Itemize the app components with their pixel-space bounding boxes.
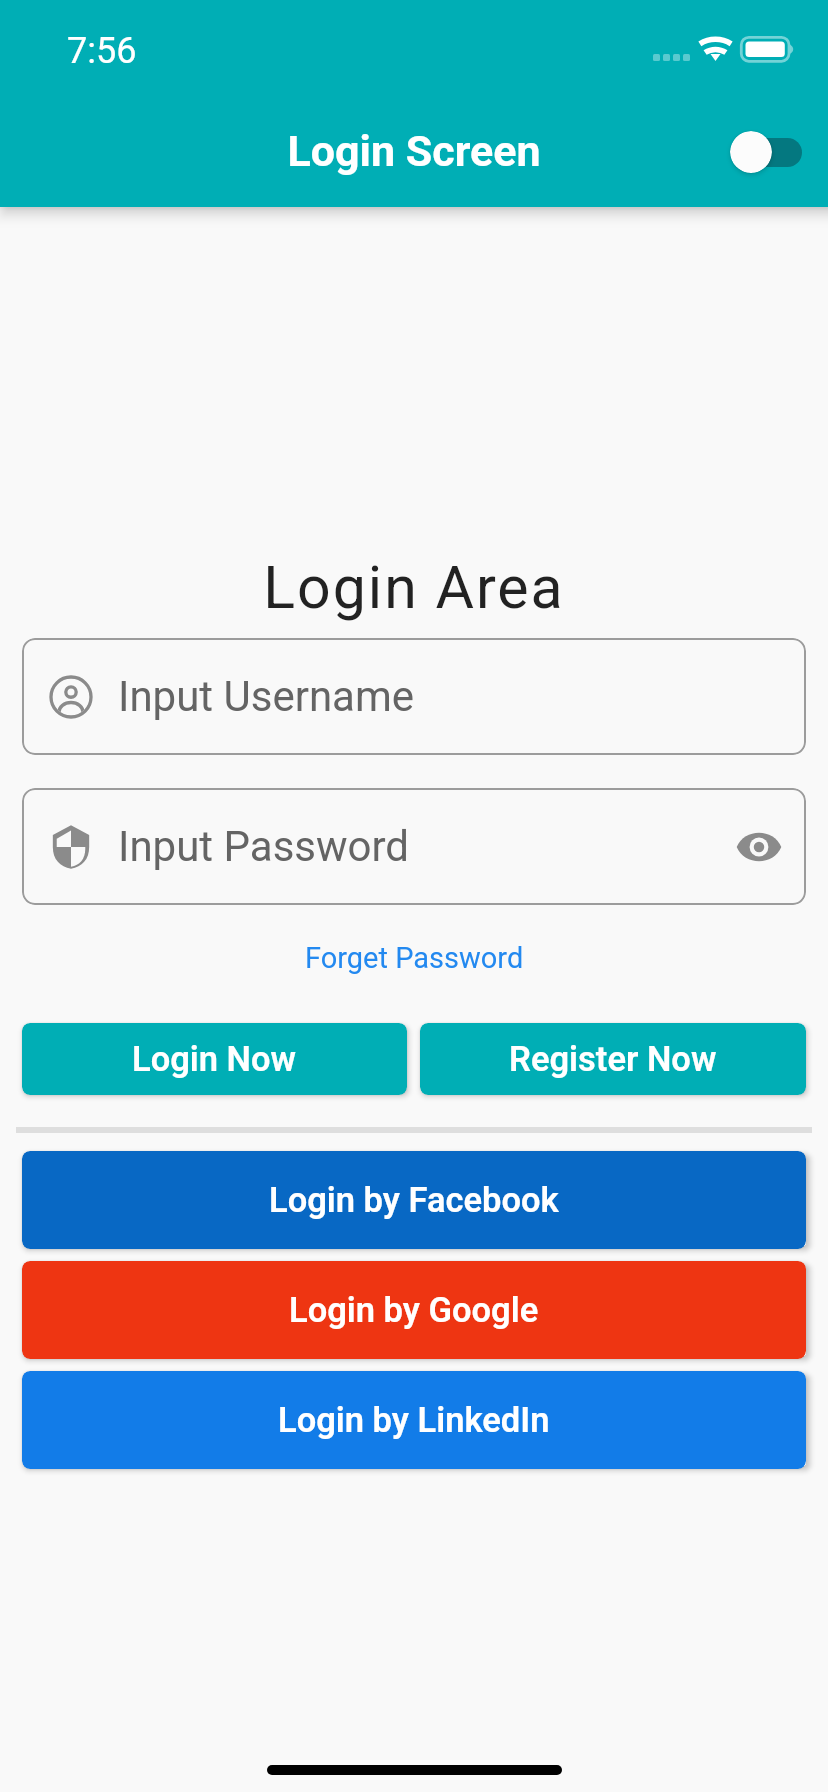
- staticText: Login by LinkedIn: [278, 1400, 550, 1440]
- staticText: Input Password: [118, 822, 410, 871]
- button[interactable]: Login by Facebook: [22, 1151, 806, 1249]
- staticText: Login Screen: [0, 126, 828, 176]
- button[interactable]: Input Username: [22, 638, 806, 755]
- staticText: 7:56: [67, 30, 137, 72]
- button[interactable]: Login by Google: [22, 1261, 806, 1359]
- button[interactable]: Input Password: [22, 788, 806, 905]
- staticText: Register Now: [509, 1039, 717, 1079]
- button[interactable]: Login Now: [22, 1023, 407, 1095]
- staticText: Forget Password: [305, 941, 524, 975]
- button[interactable]: Login by LinkedIn: [22, 1371, 806, 1469]
- button[interactable]: Register Now: [420, 1023, 806, 1095]
- button[interactable]: Show password: [729, 817, 789, 877]
- staticText: Login Now: [132, 1039, 297, 1079]
- staticText: Input Username: [118, 672, 415, 721]
- staticText: Login by Google: [289, 1290, 539, 1330]
- staticText: Login by Facebook: [269, 1180, 559, 1220]
- staticText: Login Area: [0, 553, 828, 622]
- button[interactable]: Forget Password: [293, 935, 536, 981]
- button[interactable]: Toggle dark mode: [726, 125, 806, 179]
